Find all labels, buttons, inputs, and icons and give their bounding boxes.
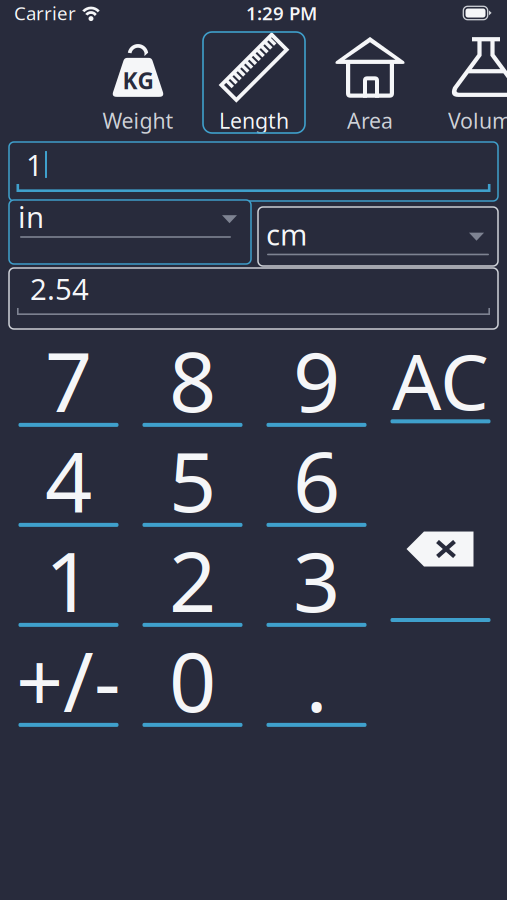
- button[interactable]: 2.54: [9, 268, 498, 329]
- button[interactable]: 1: [9, 142, 498, 201]
- button[interactable]: [378, 538, 502, 638]
- button[interactable]: 6: [254, 438, 378, 538]
- button[interactable]: Length: [203, 32, 305, 133]
- button[interactable]: [378, 438, 502, 538]
- button[interactable]: 4: [6, 438, 130, 538]
- button[interactable]: 1: [6, 538, 130, 638]
- staticText: 0: [169, 625, 216, 735]
- button[interactable]: Volume: [435, 32, 507, 133]
- button[interactable]: KG: [87, 32, 189, 133]
- staticText: 1: [26, 145, 43, 184]
- staticText: 4: [45, 425, 92, 535]
- staticText: Area: [347, 106, 393, 135]
- staticText: .: [305, 625, 327, 735]
- button[interactable]: 2: [130, 538, 254, 638]
- staticText: AC: [392, 329, 489, 431]
- button[interactable]: 5: [130, 438, 254, 538]
- staticText: 3: [293, 525, 340, 635]
- button[interactable]: 3: [254, 538, 378, 638]
- staticText: cm: [266, 215, 307, 254]
- button[interactable]: 0: [130, 638, 254, 738]
- button[interactable]: +/-: [6, 638, 130, 738]
- button[interactable]: .: [254, 638, 378, 738]
- staticText: 7: [45, 325, 92, 435]
- staticText: 9: [293, 325, 340, 435]
- staticText: 5: [169, 425, 216, 535]
- button[interactable]: AC: [378, 338, 502, 438]
- staticText: 2.54: [30, 269, 89, 308]
- staticText: 1: [45, 525, 92, 635]
- staticText: in: [18, 197, 44, 236]
- staticText: 2: [169, 525, 216, 635]
- staticText: Weight: [102, 106, 173, 135]
- staticText: 8: [169, 325, 216, 435]
- staticText: Volume: [448, 106, 507, 135]
- staticText: KG: [122, 65, 153, 95]
- staticText: 1:29 PM: [246, 1, 317, 25]
- button[interactable]: Area: [319, 32, 421, 133]
- button[interactable]: 9: [254, 338, 378, 438]
- button[interactable]: 8: [130, 338, 254, 438]
- button[interactable]: cm: [258, 207, 498, 266]
- staticText: +/-: [16, 625, 121, 735]
- staticText: Carrier: [14, 1, 76, 25]
- staticText: 6: [293, 425, 340, 535]
- staticText: Length: [219, 106, 289, 135]
- button[interactable]: in: [9, 200, 251, 264]
- button[interactable]: 7: [6, 338, 130, 438]
